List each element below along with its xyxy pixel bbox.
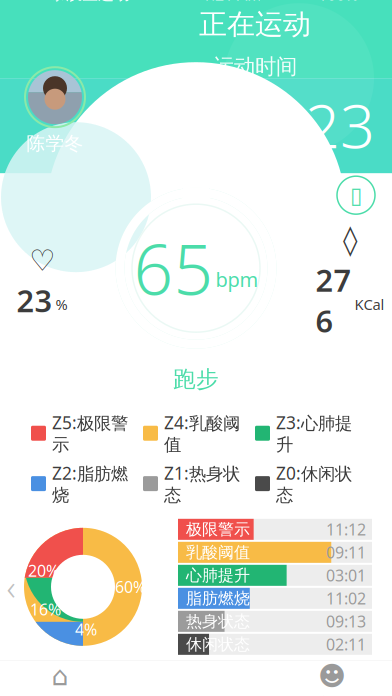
staticText: Z3:心肺提升 xyxy=(276,411,352,455)
staticText: bpm xyxy=(215,266,258,292)
staticText: 16% xyxy=(30,599,61,620)
staticText: 陈学冬 xyxy=(26,132,83,155)
staticText: 脂肪燃烧 xyxy=(186,588,250,608)
staticText: ▯ xyxy=(350,182,362,208)
staticText: 03:01 xyxy=(326,565,366,586)
button[interactable]: 设备 xyxy=(334,173,378,217)
staticText: 乳酸阈值 xyxy=(186,542,250,562)
staticText: 65 xyxy=(133,222,213,314)
staticText: 心肺提升 xyxy=(186,565,250,585)
staticText: 11:02 xyxy=(326,588,366,609)
staticText: 4% xyxy=(75,619,97,640)
staticText: 23 xyxy=(16,280,52,321)
staticText: 02:11 xyxy=(326,634,366,655)
staticText: 60% xyxy=(115,576,146,597)
staticText: Z5:极限警示 xyxy=(52,411,128,455)
staticText: 11:12 xyxy=(326,519,366,540)
staticText: 极限警示 xyxy=(186,519,250,539)
staticText: Z1:热身状态 xyxy=(164,461,240,506)
staticText: 01:31:23 xyxy=(135,84,375,165)
staticText: 跑步 xyxy=(173,365,219,393)
staticText: 09:11 xyxy=(326,542,366,563)
staticText: 1:21 AM xyxy=(202,0,262,5)
staticText: 100% xyxy=(318,0,358,5)
staticText: 正在运动 xyxy=(199,7,311,42)
staticText: Z0:休闲状态 xyxy=(276,461,352,506)
staticText: KCal xyxy=(354,295,384,314)
staticText: 276 xyxy=(315,260,351,341)
staticText: ◊ xyxy=(343,223,357,257)
button[interactable]: ☻ xyxy=(272,663,392,696)
staticText: 20% xyxy=(28,560,59,581)
staticText: ♡ xyxy=(29,244,55,277)
staticText: 运动时间 xyxy=(213,54,297,80)
staticText: ‹ xyxy=(6,564,15,610)
staticText: ☻ xyxy=(318,661,346,691)
staticText: % xyxy=(55,295,67,314)
button[interactable]: 上一页 xyxy=(0,527,22,647)
staticText: 热身状态 xyxy=(186,611,250,631)
staticText: 09:13 xyxy=(326,611,366,632)
staticText: 休闲状态 xyxy=(186,634,250,654)
staticText: Z2:脂肪燃烧 xyxy=(52,461,128,506)
button[interactable]: ⌂ xyxy=(0,663,120,696)
staticText: 泰肌星运动 xyxy=(50,0,130,4)
staticText: Z4:乳酸阈值 xyxy=(164,411,240,455)
staticText: ⌂ xyxy=(51,661,68,691)
